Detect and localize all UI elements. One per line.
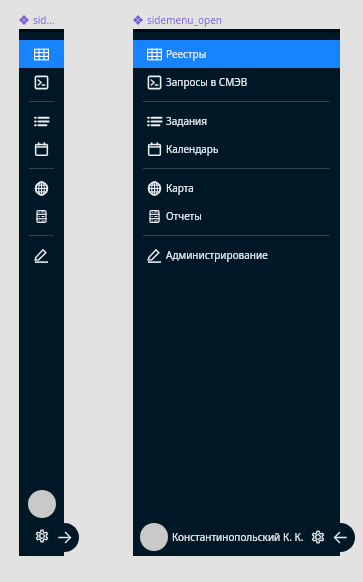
staticText: Календарь — [166, 142, 219, 156]
button[interactable] — [140, 523, 168, 551]
button[interactable]: Календарь — [133, 135, 340, 163]
button[interactable]: Settings — [35, 529, 49, 543]
staticText: sidemenu_open — [147, 13, 222, 27]
button[interactable]: Menu item — [19, 174, 64, 202]
button[interactable]: Settings — [311, 530, 325, 544]
button[interactable]: Menu item — [19, 135, 64, 163]
button[interactable] — [28, 490, 56, 518]
button[interactable]: Collapse menu — [326, 523, 355, 552]
button[interactable]: Реестры — [133, 40, 340, 68]
staticText: Отчеты — [166, 209, 202, 223]
button[interactable]: Menu item — [19, 202, 64, 230]
button[interactable]: Отчеты — [133, 202, 340, 230]
button[interactable]: Menu item — [19, 107, 64, 135]
button[interactable]: Expand menu — [50, 523, 79, 552]
button[interactable]: Menu item — [19, 40, 64, 68]
button[interactable]: Menu item — [19, 241, 64, 269]
staticText: Карта — [166, 181, 194, 195]
button[interactable]: Menu item — [19, 68, 64, 96]
button[interactable]: Задания — [133, 107, 340, 135]
button[interactable]: Запросы в СМЭВ — [133, 68, 340, 96]
button[interactable]: Карта — [133, 174, 340, 202]
staticText: Реестры — [166, 47, 207, 61]
button[interactable]: Администрирование — [133, 241, 340, 269]
staticText: Администрирование — [166, 248, 268, 262]
staticText: Запросы в СМЭВ — [166, 75, 248, 89]
staticText: Константинопольский К. К. — [172, 530, 304, 544]
staticText: Задания — [166, 114, 208, 128]
staticText: sid… — [33, 13, 55, 27]
